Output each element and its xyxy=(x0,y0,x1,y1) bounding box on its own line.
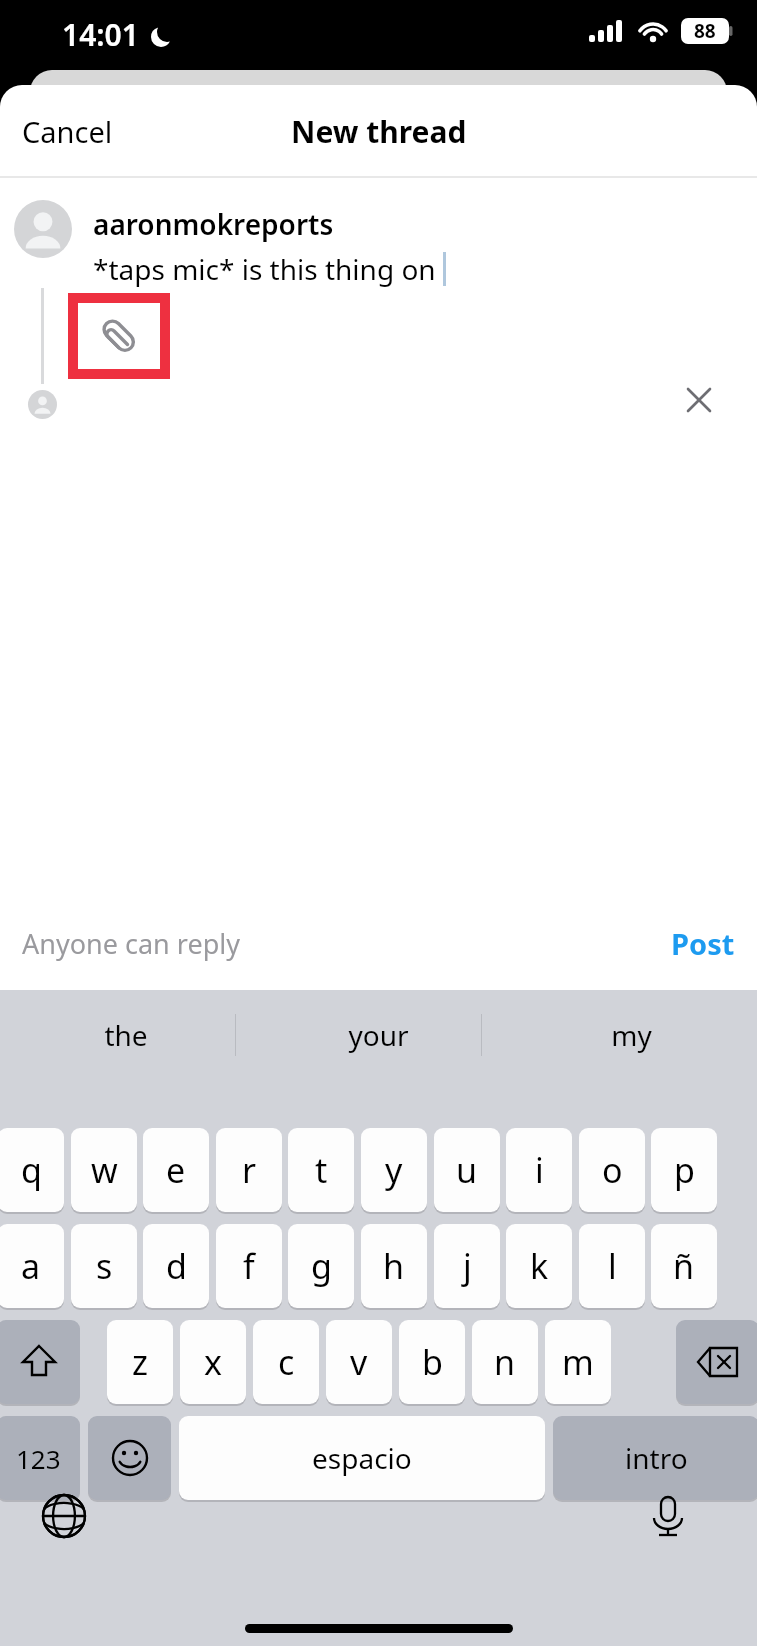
staticText: your xyxy=(348,1016,409,1054)
staticText: g xyxy=(311,1243,332,1289)
button[interactable]: g xyxy=(288,1224,354,1308)
staticText: z xyxy=(132,1339,148,1385)
staticText: 88 xyxy=(694,18,716,44)
button[interactable]: b xyxy=(399,1320,465,1404)
staticText: f xyxy=(243,1243,255,1289)
staticText: Cancel xyxy=(22,112,113,151)
staticText: aaronmokreports xyxy=(93,205,334,243)
button[interactable]: o xyxy=(579,1128,645,1212)
button[interactable]: j xyxy=(434,1224,500,1308)
button[interactable]: x xyxy=(180,1320,246,1404)
button[interactable]: Dictate xyxy=(637,1485,699,1547)
button[interactable]: i xyxy=(506,1128,572,1212)
staticText: d xyxy=(166,1243,187,1289)
staticText: 123 xyxy=(16,1441,61,1476)
staticText: y xyxy=(385,1147,403,1193)
staticText: k xyxy=(530,1243,549,1289)
button[interactable]: your xyxy=(252,990,504,1080)
staticText: s xyxy=(96,1243,113,1289)
button[interactable]: Change keyboard language xyxy=(33,1485,95,1547)
button[interactable]: Backspace xyxy=(676,1320,757,1404)
staticText: *taps mic* is this thing on xyxy=(93,250,436,288)
staticText: b xyxy=(422,1339,443,1385)
staticText: o xyxy=(602,1147,623,1193)
button[interactable]: Remove draft xyxy=(672,373,726,427)
button[interactable]: c xyxy=(253,1320,319,1404)
staticText: intro xyxy=(625,1439,688,1477)
button[interactable]: d xyxy=(143,1224,209,1308)
button[interactable]: Cancel xyxy=(8,102,127,161)
staticText: the xyxy=(104,1016,148,1054)
button[interactable]: Emoji xyxy=(88,1416,171,1500)
button[interactable]: n xyxy=(472,1320,538,1404)
staticText: m xyxy=(562,1339,594,1385)
staticText: Anyone can reply xyxy=(22,925,240,962)
staticText: n xyxy=(494,1339,516,1385)
staticText: espacio xyxy=(312,1439,412,1477)
staticText: i xyxy=(535,1147,544,1193)
staticText: 14:01 xyxy=(62,14,139,55)
button[interactable]: f xyxy=(216,1224,282,1308)
button[interactable]: intro xyxy=(553,1416,757,1500)
staticText: j xyxy=(463,1243,472,1289)
staticText: p xyxy=(674,1147,695,1193)
button[interactable]: z xyxy=(107,1320,173,1404)
staticText: v xyxy=(350,1339,368,1385)
button[interactable]: r xyxy=(216,1128,282,1212)
button[interactable]: q xyxy=(0,1128,64,1212)
button[interactable]: Attach media xyxy=(78,303,160,369)
button[interactable]: Shift xyxy=(0,1320,80,1404)
staticText: x xyxy=(204,1339,222,1385)
button[interactable]: ñ xyxy=(651,1224,717,1308)
button[interactable]: m xyxy=(545,1320,611,1404)
button[interactable]: my xyxy=(505,990,757,1080)
button[interactable]: l xyxy=(579,1224,645,1308)
button[interactable]: the xyxy=(0,990,252,1080)
button[interactable]: e xyxy=(143,1128,209,1212)
button[interactable]: Post xyxy=(655,916,751,971)
button[interactable]: y xyxy=(361,1128,427,1212)
button[interactable]: u xyxy=(434,1128,500,1212)
staticText: New thread xyxy=(291,111,467,152)
button[interactable]: s xyxy=(71,1224,137,1308)
staticText: u xyxy=(456,1147,478,1193)
staticText: my xyxy=(611,1016,652,1054)
button[interactable]: 123 xyxy=(0,1416,80,1500)
staticText: h xyxy=(383,1243,405,1289)
button[interactable]: v xyxy=(326,1320,392,1404)
button[interactable]: a xyxy=(0,1224,64,1308)
staticText: Post xyxy=(671,924,735,963)
button[interactable]: k xyxy=(506,1224,572,1308)
staticText: c xyxy=(278,1339,295,1385)
staticText: ñ xyxy=(673,1243,695,1289)
button[interactable]: h xyxy=(361,1224,427,1308)
staticText: w xyxy=(91,1147,118,1193)
button[interactable]: w xyxy=(71,1128,137,1212)
staticText: q xyxy=(21,1147,42,1193)
button[interactable]: t xyxy=(288,1128,354,1212)
staticText: e xyxy=(166,1147,186,1193)
staticText: t xyxy=(315,1147,328,1193)
staticText: r xyxy=(242,1147,257,1193)
button[interactable]: Anyone can reply xyxy=(6,917,256,970)
button[interactable]: espacio xyxy=(179,1416,545,1500)
staticText: l xyxy=(608,1243,617,1289)
button[interactable]: p xyxy=(651,1128,717,1212)
staticText: a xyxy=(21,1243,41,1289)
